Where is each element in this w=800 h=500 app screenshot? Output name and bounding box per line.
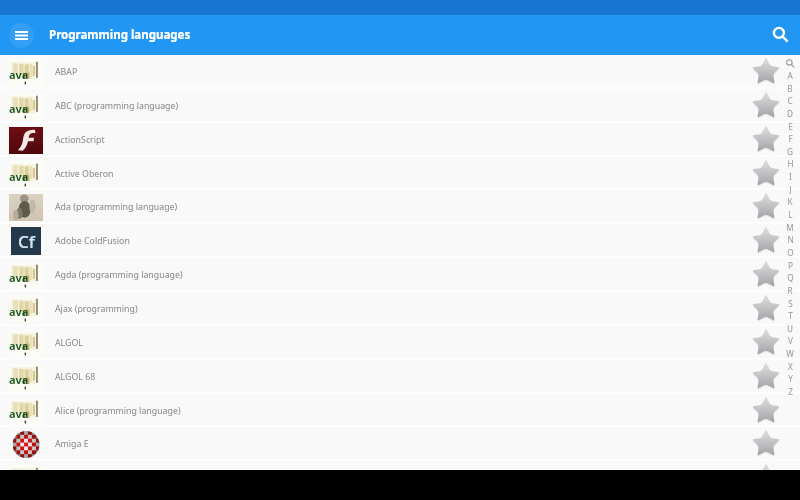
staticText: K [787, 196, 793, 207]
button[interactable]: Alphabet index [780, 57, 800, 470]
staticText: Z [788, 386, 793, 397]
staticText: H [787, 158, 794, 169]
staticText: C [787, 95, 793, 106]
staticText: A [787, 70, 793, 81]
staticText: ava [9, 406, 29, 421]
staticText: F [788, 133, 793, 144]
staticText: R [787, 285, 793, 296]
button[interactable]: Search [760, 15, 800, 55]
staticText: ActionScript [55, 134, 105, 146]
button[interactable]: Amiga E [0, 427, 800, 461]
staticText: I [789, 171, 792, 182]
staticText: S [788, 298, 793, 309]
staticText: Programming languages [49, 27, 191, 43]
staticText: Adobe ColdFusion [55, 235, 130, 247]
staticText: ava [9, 270, 29, 285]
staticText: Y [788, 373, 793, 384]
staticText: G [787, 146, 793, 157]
staticText: U [787, 323, 793, 334]
staticText: Q [787, 272, 794, 283]
button[interactable]: ActionScript [0, 123, 800, 157]
staticText: ALGOL 68 [55, 371, 96, 383]
button[interactable]: ava [0, 292, 800, 326]
button[interactable]: ava [0, 394, 800, 427]
staticText: ava [9, 304, 29, 319]
staticText: O [787, 247, 794, 258]
staticText: P [788, 260, 793, 271]
staticText: B [787, 83, 793, 94]
staticText: ava [9, 372, 29, 387]
staticText: Active Oberon [55, 168, 114, 180]
staticText: ava [9, 101, 29, 116]
button[interactable]: ava [0, 157, 800, 190]
button[interactable]: Open navigation drawer [9, 23, 34, 48]
button[interactable]: Ada (programming language) [0, 190, 800, 224]
staticText: L [788, 209, 793, 220]
button[interactable]: ava [0, 258, 800, 292]
staticText: J [789, 184, 792, 195]
staticText: W [786, 348, 794, 359]
staticText: Agda (programming language) [55, 269, 183, 281]
staticText: Ajax (programming) [55, 303, 138, 315]
staticText: Cf [18, 230, 35, 253]
button[interactable]: Cf [0, 224, 800, 258]
button[interactable]: ava [0, 326, 800, 360]
button[interactable]: ava [0, 461, 800, 495]
staticText: ava [9, 67, 29, 82]
staticText: Alice (programming language) [55, 405, 181, 417]
staticText: N [787, 234, 794, 245]
staticText: M [786, 222, 794, 233]
staticText: ALGOL [55, 337, 83, 349]
staticText: ABAP [55, 66, 78, 78]
staticText: Amiga E [55, 438, 89, 450]
staticText: D [787, 108, 793, 119]
staticText: Ada (programming language) [55, 201, 178, 213]
staticText: V [788, 335, 793, 346]
button[interactable]: ava [0, 55, 800, 89]
staticText: E [788, 121, 793, 132]
button[interactable]: ava [0, 360, 800, 394]
staticText: ava [9, 338, 29, 353]
staticText: T [788, 310, 793, 321]
button[interactable]: ava [0, 89, 800, 123]
staticText: ABC (programming language) [55, 100, 179, 112]
staticText: X [788, 361, 793, 372]
staticText: ava [9, 169, 29, 184]
